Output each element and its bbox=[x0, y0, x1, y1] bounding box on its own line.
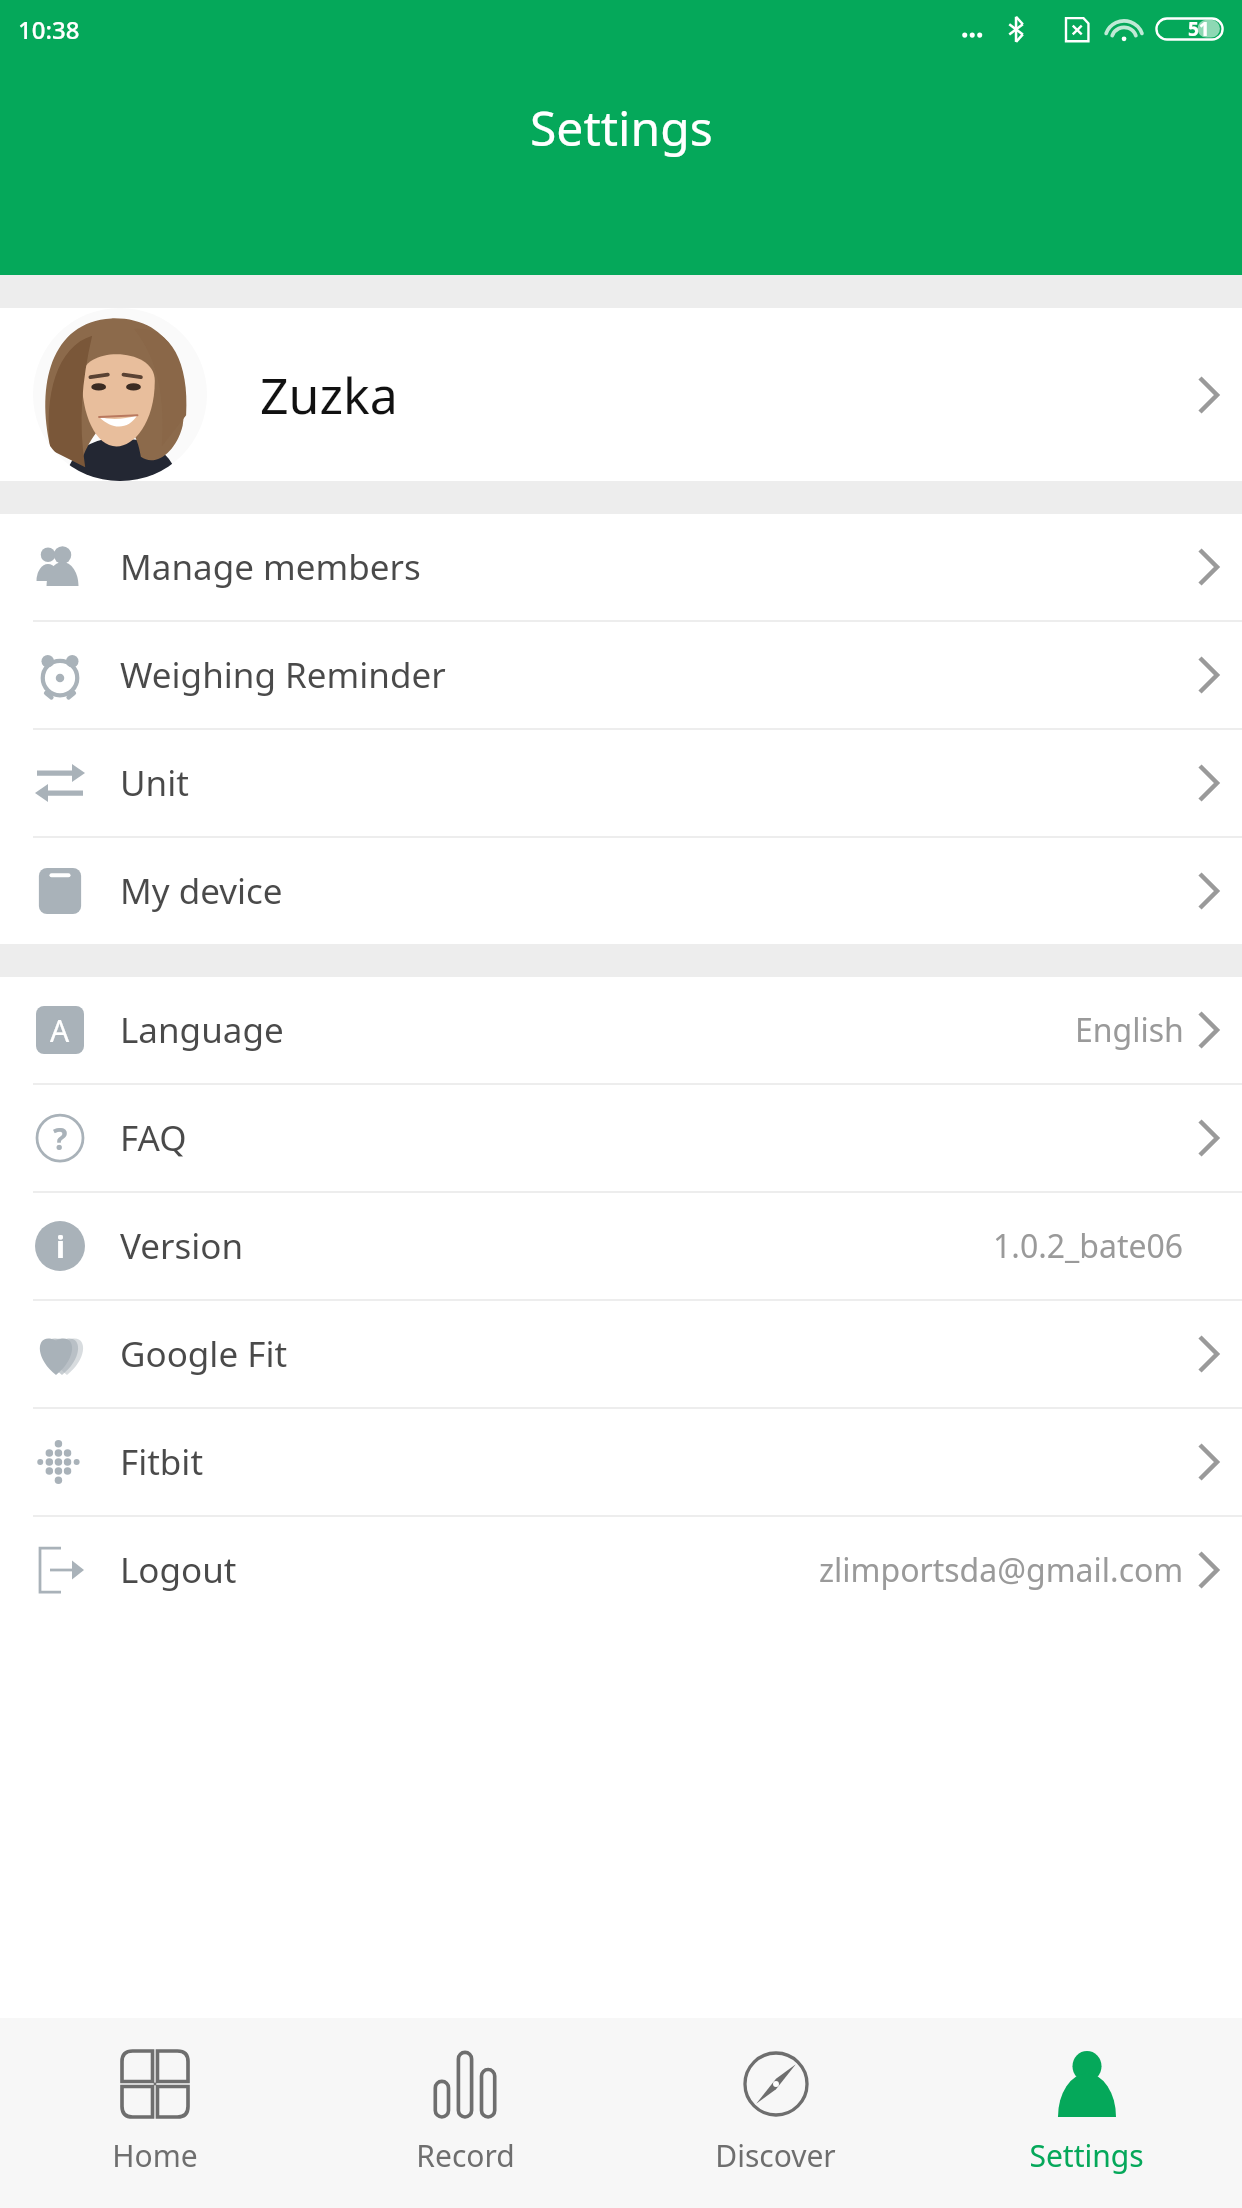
staticText: A bbox=[50, 1010, 70, 1051]
button[interactable]: ? bbox=[0, 1085, 1242, 1191]
button[interactable]: i bbox=[0, 1193, 1242, 1299]
staticText: English bbox=[1075, 1008, 1184, 1052]
button[interactable]: Google Fit bbox=[0, 1301, 1242, 1407]
button[interactable]: Logout bbox=[0, 1517, 1242, 1623]
staticText: zlimportsda@gmail.com bbox=[819, 1548, 1184, 1592]
button[interactable]: Settings bbox=[931, 2018, 1242, 2208]
button[interactable]: Record bbox=[310, 2018, 620, 2208]
staticText: 10:38 bbox=[18, 13, 80, 46]
staticText: i bbox=[56, 1226, 65, 1267]
button[interactable]: Manage members bbox=[0, 514, 1242, 620]
button[interactable]: Fitbit bbox=[0, 1409, 1242, 1515]
staticText: My device bbox=[120, 867, 283, 915]
button[interactable]: My device bbox=[0, 838, 1242, 944]
staticText: Settings bbox=[1029, 2135, 1144, 2176]
staticText: FAQ bbox=[120, 1114, 187, 1162]
button[interactable]: Unit bbox=[0, 730, 1242, 836]
button[interactable]: Home bbox=[0, 2018, 310, 2208]
button[interactable]: Discover bbox=[620, 2018, 931, 2208]
button[interactable]: Weighing Reminder bbox=[0, 622, 1242, 728]
staticText: Unit bbox=[120, 759, 189, 807]
staticText: Logout bbox=[120, 1546, 237, 1594]
staticText: 51 bbox=[1188, 16, 1210, 42]
staticText: Version bbox=[120, 1222, 244, 1270]
staticText: Zuzka bbox=[260, 361, 398, 429]
staticText: Discover bbox=[715, 2135, 836, 2176]
staticText: Record bbox=[416, 2135, 515, 2176]
button[interactable]: A bbox=[0, 977, 1242, 1083]
staticText: ? bbox=[53, 1118, 68, 1159]
staticText: Settings bbox=[530, 95, 713, 160]
staticText: Home bbox=[112, 2135, 198, 2176]
staticText: Language bbox=[120, 1006, 284, 1054]
button[interactable]: Zuzka bbox=[0, 308, 1242, 481]
staticText: Fitbit bbox=[120, 1438, 204, 1486]
staticText: Manage members bbox=[120, 543, 421, 591]
staticText: 1.0.2_bate06 bbox=[993, 1224, 1184, 1268]
staticText: Google Fit bbox=[120, 1330, 288, 1378]
staticText: Weighing Reminder bbox=[120, 651, 446, 699]
